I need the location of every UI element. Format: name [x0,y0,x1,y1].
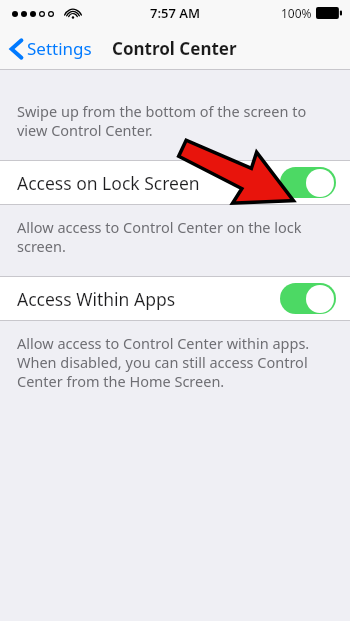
staticText: Settings [27,37,92,60]
staticText: 100% [281,5,312,21]
staticText: Control Center [112,37,237,60]
button[interactable]: Settings [0,33,100,64]
button[interactable]: Toggle Access on Lock Screen [280,167,336,198]
button[interactable]: Access on Lock Screen [0,160,350,205]
staticText: 7:57 AM [150,4,201,22]
staticText: Allow access to Control Center on the lo… [17,217,330,256]
staticText: Access Within Apps [17,287,176,311]
staticText: Swipe up from the bottom of the screen t… [17,101,334,140]
staticText: Access on Lock Screen [17,171,200,195]
staticText: Allow access to Control Center within ap… [17,333,330,391]
button[interactable]: Toggle Access Within Apps [280,283,336,314]
button[interactable]: Access Within Apps [0,276,350,321]
